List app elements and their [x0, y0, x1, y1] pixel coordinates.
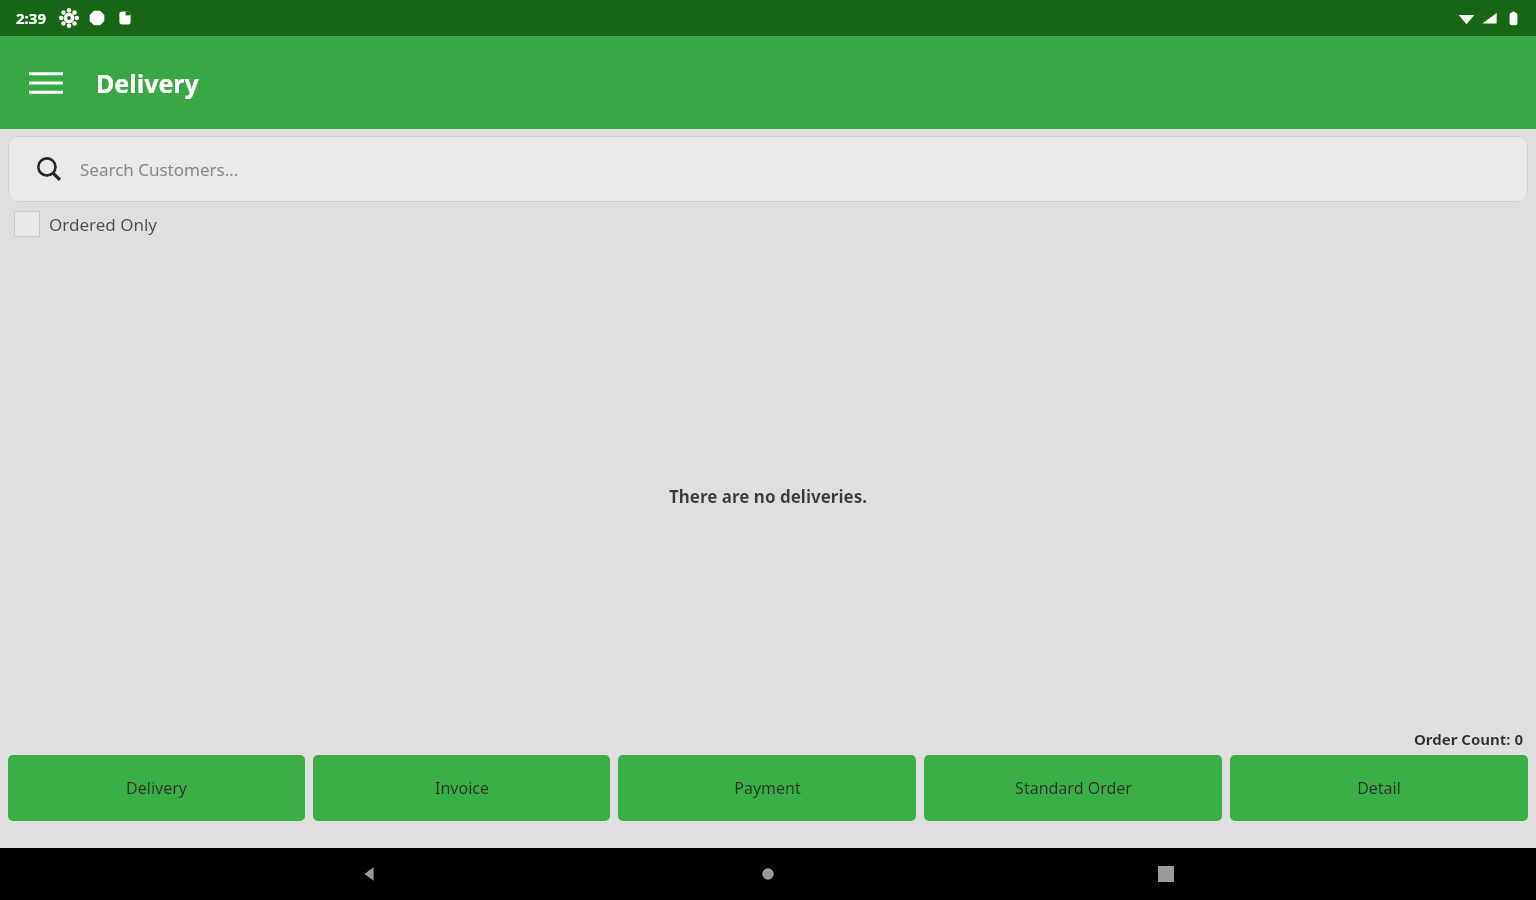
button[interactable]: Standard Order: [924, 755, 1222, 821]
staticText: Delivery: [96, 66, 199, 100]
button[interactable]: Recent apps: [1138, 848, 1194, 900]
staticText: Search Customers...: [80, 158, 239, 181]
button[interactable]: Open navigation menu: [22, 59, 70, 107]
button[interactable]: Invoice: [313, 755, 610, 821]
button[interactable]: Ordered Only: [14, 211, 157, 237]
staticText: Invoice: [435, 777, 489, 799]
button[interactable]: Home: [740, 848, 796, 900]
staticText: There are no deliveries.: [669, 485, 867, 508]
staticText: Ordered Only: [49, 213, 157, 236]
staticText: Delivery: [126, 777, 187, 799]
button[interactable]: Detail: [1230, 755, 1528, 821]
button[interactable]: Search Customers...: [8, 136, 1528, 202]
button[interactable]: Delivery: [8, 755, 305, 821]
button[interactable]: Back: [342, 848, 398, 900]
button[interactable]: Payment: [618, 755, 916, 821]
staticText: Order Count: 0: [1414, 729, 1524, 749]
staticText: Standard Order: [1015, 777, 1132, 799]
staticText: 2:39: [16, 8, 46, 28]
staticText: Payment: [734, 777, 801, 799]
staticText: Detail: [1357, 777, 1401, 799]
